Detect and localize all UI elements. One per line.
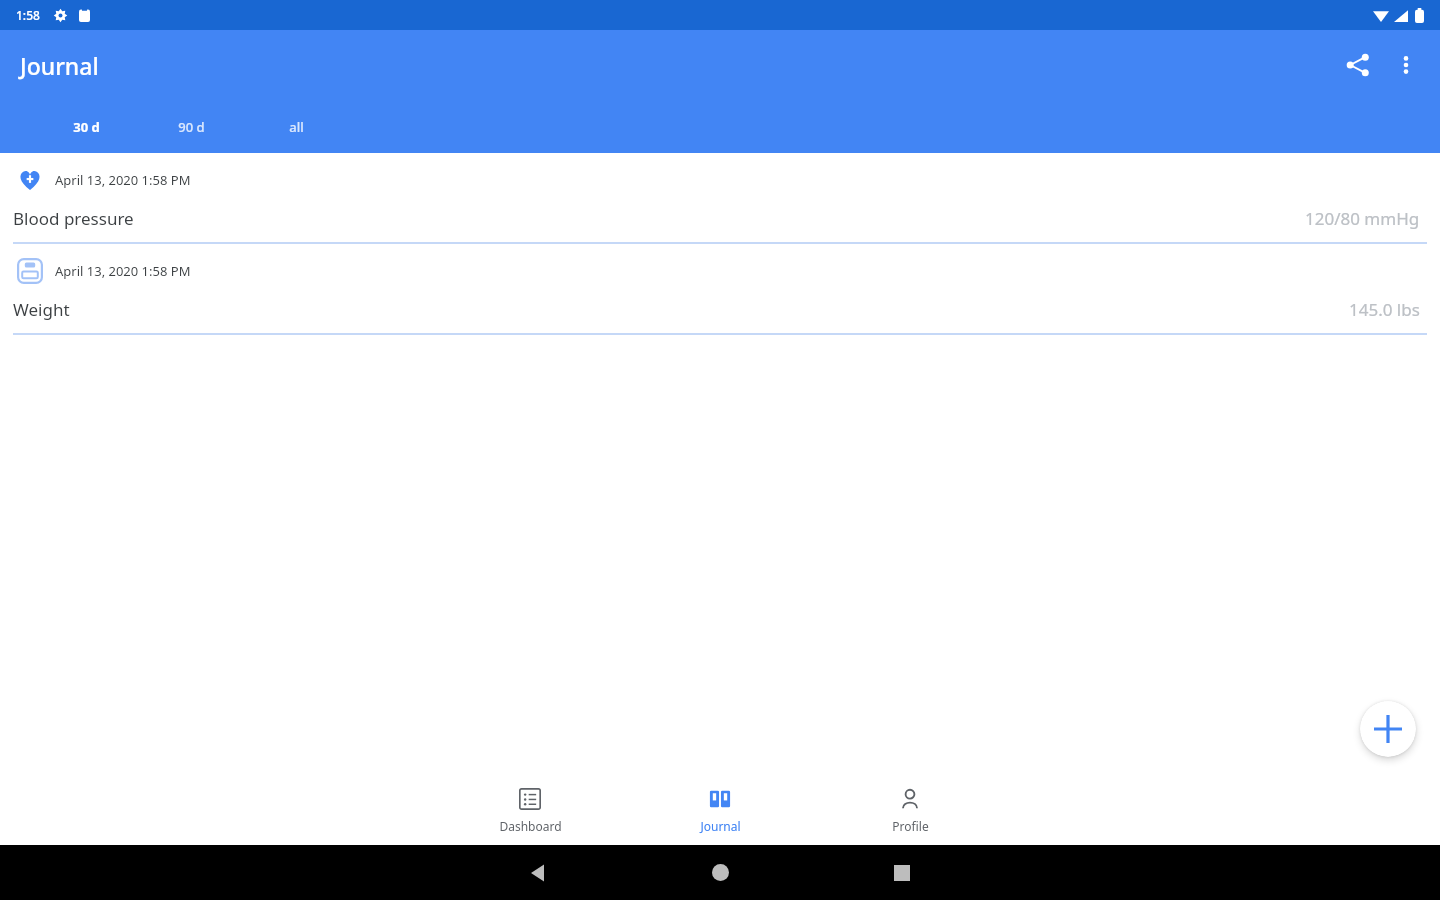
staticText: April 13, 2020 1:58 PM [55, 171, 191, 189]
staticText: Journal [20, 50, 99, 81]
button[interactable]: More options [1382, 41, 1430, 89]
staticText: Blood pressure [13, 207, 134, 230]
button[interactable]: Profile [850, 775, 970, 845]
staticText: Dashboard [499, 818, 562, 834]
staticText: 120/80 mmHg [1305, 207, 1420, 230]
staticText: 1:58 [16, 7, 40, 23]
button[interactable]: Journal [660, 775, 780, 845]
button[interactable]: Share [1334, 41, 1382, 89]
button[interactable]: April 13, 2020 1:58 PM [0, 153, 1440, 244]
staticText: Journal [700, 818, 741, 834]
button[interactable]: all [244, 100, 349, 153]
staticText: April 13, 2020 1:58 PM [55, 262, 191, 280]
button[interactable]: April 13, 2020 1:58 PM [0, 244, 1440, 335]
staticText: 30 d [73, 118, 100, 136]
button[interactable]: Home [660, 845, 780, 900]
button[interactable]: Recent apps [842, 845, 962, 900]
staticText: all [289, 118, 304, 136]
button[interactable]: Add entry [1360, 701, 1416, 757]
staticText: 90 d [178, 118, 205, 136]
staticText: Profile [892, 818, 929, 834]
button[interactable]: 30 d [34, 100, 139, 153]
button[interactable]: Back [478, 845, 598, 900]
staticText: 145.0 lbs [1349, 298, 1420, 321]
staticText: Weight [13, 298, 70, 321]
button[interactable]: Dashboard [470, 775, 590, 845]
button[interactable]: 90 d [139, 100, 244, 153]
